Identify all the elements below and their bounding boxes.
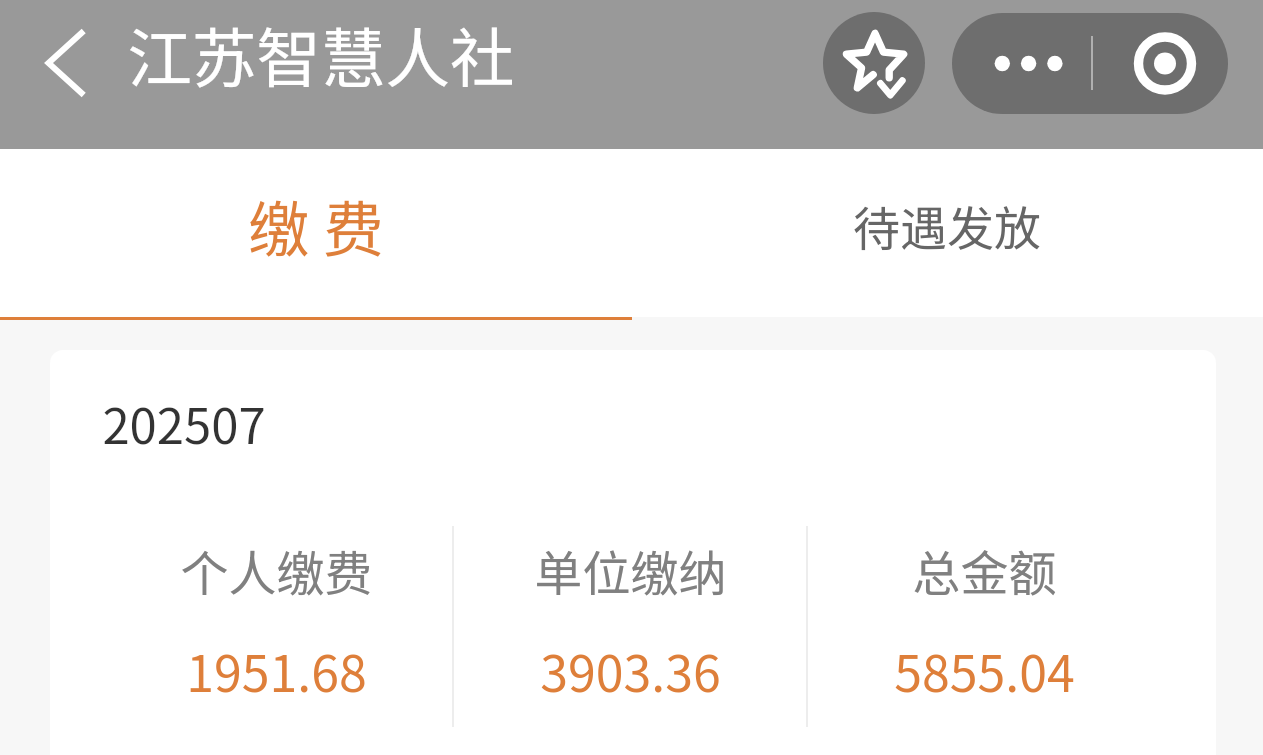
staticText: 江苏智慧人社 (127, 7, 515, 100)
staticText: 5855.04 (894, 634, 1075, 706)
staticText: 待遇发放 (853, 191, 1041, 259)
staticText: 缴 费 (248, 181, 384, 269)
button[interactable]: Back (18, 8, 112, 118)
staticText: 1951.68 (186, 634, 367, 706)
button[interactable]: Close mini program (1093, 13, 1228, 114)
button[interactable]: 待遇发放 (631, 149, 1263, 317)
staticText: 3903.36 (540, 634, 721, 706)
button[interactable]: 缴 费 (0, 149, 631, 317)
button[interactable]: More options (952, 13, 1092, 114)
staticText: 单位缴纳 (534, 535, 727, 605)
button[interactable]: 202507 (50, 350, 1216, 755)
button[interactable]: Favorite (823, 12, 925, 114)
staticText: 202507 (102, 387, 266, 458)
staticText: 个人缴费 (180, 535, 373, 605)
staticText: 总金额 (912, 535, 1057, 605)
